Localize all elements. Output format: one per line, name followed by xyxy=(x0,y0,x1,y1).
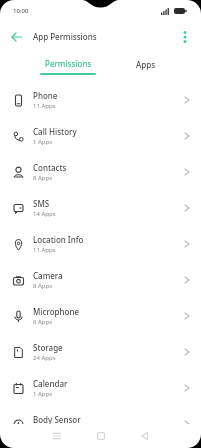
button[interactable]: Camera xyxy=(0,262,201,298)
staticText: 1 Apps xyxy=(33,138,53,146)
staticText: 14 Apps xyxy=(33,210,56,218)
button[interactable]: Call History xyxy=(0,118,201,154)
staticText: 1 Apps xyxy=(33,390,53,398)
button[interactable]: Calendar xyxy=(0,370,201,406)
staticText: App Permissions xyxy=(33,31,97,42)
staticText: Storage xyxy=(33,342,63,353)
staticText: 11 Apps xyxy=(33,102,56,110)
staticText: Phone xyxy=(33,90,58,101)
staticText: Contacts xyxy=(33,162,67,173)
staticText: Body Sensor xyxy=(33,414,81,425)
button[interactable]: Body Sensor xyxy=(0,406,201,442)
staticText: Call History xyxy=(33,126,77,137)
staticText: 11 Apps xyxy=(33,246,56,254)
staticText: 8 Apps xyxy=(33,282,53,290)
button[interactable] xyxy=(50,429,64,443)
staticText: Apps xyxy=(136,59,156,70)
button[interactable]: Apps xyxy=(117,51,175,82)
button[interactable]: Permissions xyxy=(39,51,97,82)
staticText: 6 Apps xyxy=(33,318,53,326)
button[interactable]: Phone xyxy=(0,82,201,118)
button[interactable] xyxy=(138,429,152,443)
staticText: Permissions xyxy=(45,58,92,69)
staticText: Location Info xyxy=(33,234,84,245)
button[interactable]: Location Info xyxy=(0,226,201,262)
button[interactable] xyxy=(94,429,108,443)
button[interactable] xyxy=(9,29,25,45)
staticText: 8 Apps xyxy=(33,174,53,182)
button[interactable]: Microphone xyxy=(0,298,201,334)
button[interactable] xyxy=(177,29,193,45)
button[interactable]: SMS xyxy=(0,190,201,226)
staticText: Camera xyxy=(33,270,63,281)
staticText: SMS xyxy=(33,198,50,209)
button[interactable]: Storage xyxy=(0,334,201,370)
button[interactable]: Contacts xyxy=(0,154,201,190)
staticText: 24 Apps xyxy=(33,354,56,362)
staticText: 10:00 xyxy=(13,7,29,15)
staticText: Microphone xyxy=(33,306,80,317)
staticText: Calendar xyxy=(33,378,68,389)
